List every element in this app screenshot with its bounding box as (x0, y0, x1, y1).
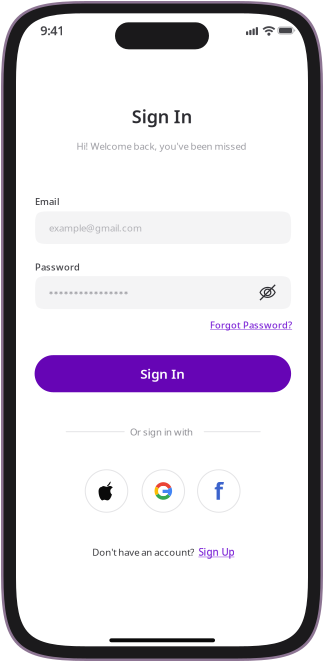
button[interactable]: Sign In (35, 355, 291, 392)
button[interactable]: Sign in with Apple (85, 469, 128, 513)
staticText: example@gmail.com (49, 221, 142, 234)
button[interactable]: Sign in with Google (142, 469, 185, 513)
button[interactable]: Sign in with Facebook (197, 469, 241, 513)
staticText: ∗∗∗∗∗∗∗∗∗∗∗∗∗∗∗∗ (49, 289, 129, 296)
staticText: Sign In (132, 104, 192, 128)
staticText: Sign In (140, 365, 185, 383)
staticText: 9:41 (40, 22, 64, 39)
button[interactable]: example@gmail.com (35, 211, 291, 244)
staticText: Hi! Welcome back, you've been missed (76, 139, 246, 152)
staticText: Email (35, 195, 60, 208)
button[interactable]: Forgot Password? (210, 318, 292, 331)
staticText: Or sign in with (130, 425, 193, 438)
button[interactable]: Show password (259, 284, 276, 301)
button[interactable]: Sign Up (198, 545, 234, 559)
staticText: Don't have an account? (92, 545, 194, 558)
staticText: Password (35, 261, 80, 273)
staticText: Sign Up (198, 545, 234, 559)
staticText: f (214, 476, 223, 506)
staticText: Forgot Password? (210, 318, 292, 331)
